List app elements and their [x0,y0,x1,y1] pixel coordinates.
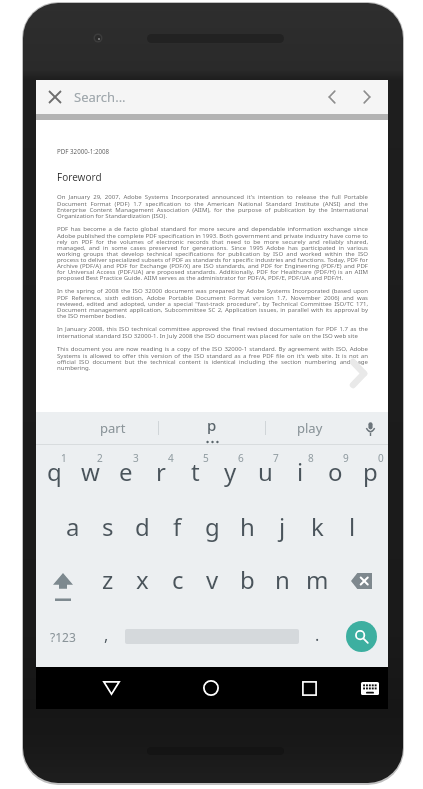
button[interactable]: 2 [72,451,108,504]
staticText: l [349,510,356,543]
staticText: h [240,510,255,543]
button[interactable]: Voice input [353,412,387,444]
staticText: ?123 [50,629,76,645]
button[interactable]: f [160,504,195,557]
button[interactable]: 3 [108,451,143,504]
staticText: In the spring of 2008 the ISO 32000 docu… [57,287,368,320]
button[interactable]: Space [124,610,300,663]
staticText: p [207,415,217,435]
button[interactable]: Backspace [335,557,388,610]
staticText: m [306,563,329,596]
staticText: j [279,510,286,543]
staticText: a [66,510,80,543]
staticText: c [172,563,184,596]
staticText: PDF has become a de facto global standar… [57,225,368,282]
staticText: o [328,455,343,488]
button[interactable]: c [160,557,195,610]
button[interactable]: 9 [318,451,353,504]
button[interactable]: p [159,412,265,444]
button[interactable]: g [195,504,230,557]
staticText: r [156,455,166,488]
staticText: , [104,624,109,646]
button[interactable]: play [266,412,353,444]
button[interactable]: v [195,557,230,610]
button[interactable]: s [90,504,125,557]
staticText: 2 [97,451,103,465]
button[interactable]: Search [335,610,388,663]
button[interactable]: m [300,557,335,610]
staticText: Search... [74,88,126,106]
button[interactable]: l [335,504,370,557]
button[interactable]: n [265,557,300,610]
button[interactable]: b [230,557,265,610]
staticText: e [119,455,133,488]
staticText: g [205,510,220,543]
button[interactable]: x [125,557,160,610]
button[interactable]: 6 [213,451,248,504]
staticText: z [102,563,114,596]
staticText: y [224,455,237,488]
staticText: x [136,563,149,596]
staticText: . [315,624,320,646]
staticText: 1 [61,451,67,465]
staticText: u [258,455,273,488]
button[interactable]: Home [161,667,260,709]
button[interactable]: 0 [353,451,388,504]
staticText: PDF 32000-1:2008 [57,147,110,155]
button[interactable]: . [300,610,335,663]
button[interactable]: 8 [283,451,318,504]
staticText: 5 [203,451,209,465]
staticText: 8 [308,451,314,465]
button[interactable]: Shift [36,557,90,610]
staticText: 7 [273,451,279,465]
staticText: This document you are now reading is a c… [57,345,368,372]
button[interactable]: part [68,412,158,444]
button[interactable]: 4 [143,451,178,504]
button[interactable]: , [89,610,124,663]
staticText: 0 [378,451,384,465]
button[interactable]: h [230,504,265,557]
staticText: w [81,455,100,488]
staticText: 9 [343,451,349,465]
staticText: play [297,419,323,437]
button[interactable]: Back [62,667,161,709]
staticText: On January 29, 2007, Adobe Systems Incor… [57,193,368,220]
staticText: b [240,563,255,596]
staticText: k [311,510,324,543]
staticText: Foreword [57,170,102,184]
staticText: 3 [133,451,139,465]
staticText: 4 [168,451,174,465]
staticText: i [297,455,304,488]
button[interactable]: 7 [248,451,283,504]
button[interactable]: 1 [36,451,72,504]
staticText: 6 [238,451,244,465]
button[interactable]: Next result [354,84,380,110]
button[interactable]: 5 [178,451,213,504]
staticText: q [47,455,62,488]
staticText: part [100,419,126,437]
button[interactable]: ?123 [36,610,89,663]
staticText: v [206,563,219,596]
staticText: f [173,510,182,543]
staticText: d [135,510,150,543]
button[interactable]: j [265,504,300,557]
button[interactable]: d [125,504,160,557]
button[interactable]: Switch keyboard [355,667,384,709]
button[interactable]: Recents [260,667,359,709]
staticText: p [363,455,378,488]
staticText: s [102,510,114,543]
button[interactable]: Close search [42,84,68,110]
button[interactable]: z [90,557,125,610]
staticText: In January 2008, this ISO technical comm… [57,325,368,340]
staticText: n [275,563,290,596]
staticText: t [191,455,200,488]
button[interactable]: k [300,504,335,557]
button[interactable]: Previous result [319,84,345,110]
button[interactable]: a [55,504,90,557]
